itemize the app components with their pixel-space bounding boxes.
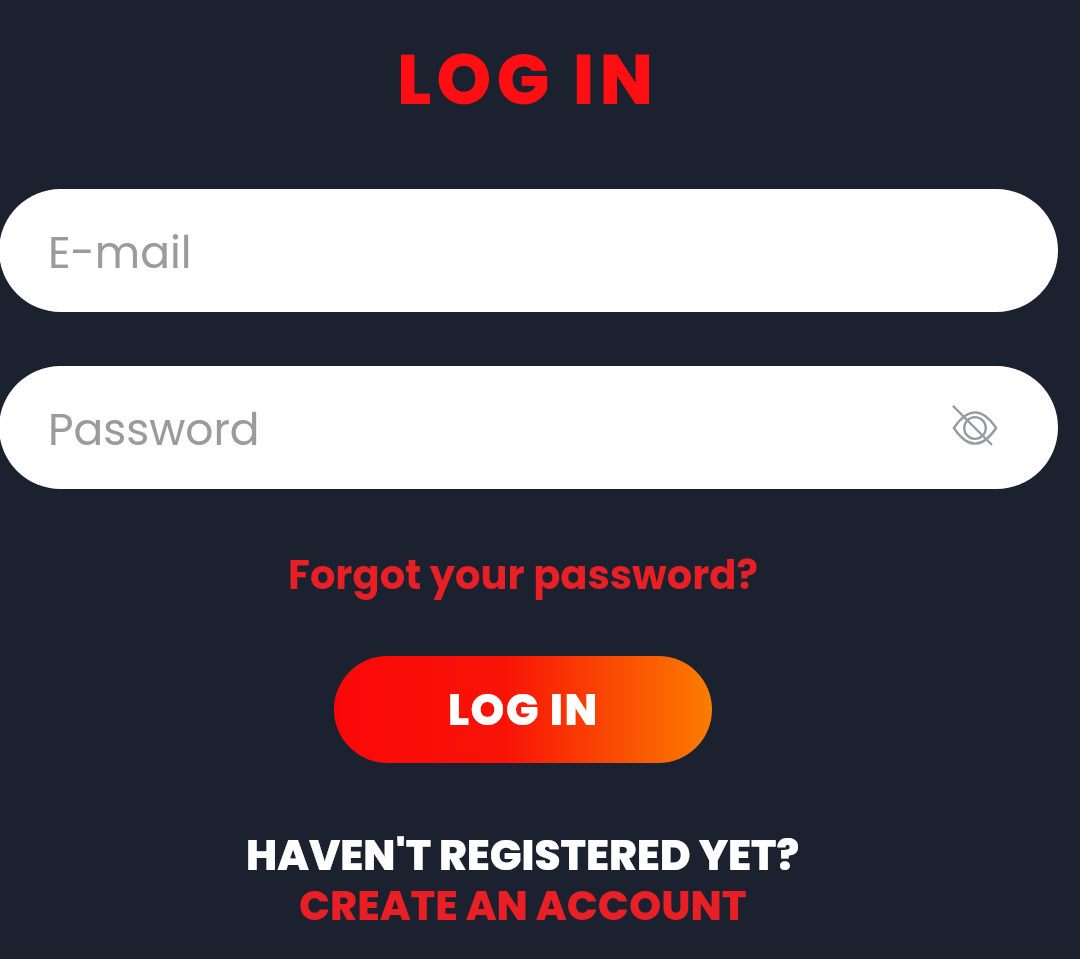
button[interactable]: E-mail — [0, 189, 1058, 312]
button[interactable]: Password — [0, 366, 1058, 489]
staticText: Password — [48, 399, 260, 461]
staticText: HAVEN'T REGISTERED YET? — [246, 826, 800, 885]
button[interactable]: LOG IN — [334, 656, 712, 763]
staticText: E-mail — [48, 222, 192, 284]
button[interactable] — [952, 405, 998, 451]
staticText: LOG IN — [397, 30, 658, 128]
button[interactable]: CREATE AN ACCOUNT — [299, 877, 747, 934]
staticText: LOG IN — [448, 680, 599, 740]
button[interactable]: Forgot your password? — [288, 547, 759, 603]
